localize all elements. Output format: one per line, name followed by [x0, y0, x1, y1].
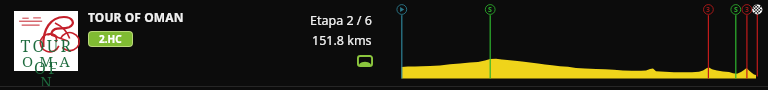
staticText: S [488, 5, 492, 15]
button[interactable]: Category 3 climb [703, 4, 713, 15]
staticText: OMAN [17, 51, 81, 90]
staticText: S [734, 5, 738, 15]
staticText: TOUR OF [15, 35, 79, 79]
button[interactable]: 2.HC [89, 32, 132, 46]
button[interactable]: Sprint [485, 4, 495, 15]
staticText: 3 [745, 5, 750, 15]
button[interactable]: Tour of Oman logo [14, 11, 78, 71]
staticText: 3 [706, 5, 711, 15]
button[interactable]: Flat stage profile [357, 55, 373, 67]
staticText: 151.8 kms [312, 32, 372, 49]
button[interactable]: Sprint [731, 4, 741, 15]
staticText: Etapa 2 / 6 [310, 12, 372, 29]
staticText: TOUR OF OMAN [88, 9, 184, 25]
button[interactable]: Category 3 climb [742, 4, 752, 15]
staticText: 2.HC [99, 32, 122, 46]
